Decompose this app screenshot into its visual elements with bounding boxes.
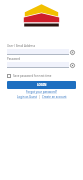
button[interactable]: Save password for next time xyxy=(7,74,52,78)
other: User xyxy=(70,50,75,55)
button[interactable]: Create an account xyxy=(42,95,67,99)
staticText: | xyxy=(38,95,42,99)
staticText: Password xyxy=(7,57,21,61)
button[interactable]: User field xyxy=(7,49,69,55)
other: Password xyxy=(70,63,75,68)
staticText: User / Email Address xyxy=(7,44,36,48)
button[interactable]: Login as Guest xyxy=(17,95,38,99)
staticText: Save password for next time xyxy=(13,74,52,78)
button[interactable]: LOGIN xyxy=(7,81,76,89)
button[interactable]: Forgot your password? xyxy=(26,90,58,94)
button[interactable]: Password field xyxy=(7,62,69,68)
staticText: LOGIN xyxy=(37,83,47,87)
